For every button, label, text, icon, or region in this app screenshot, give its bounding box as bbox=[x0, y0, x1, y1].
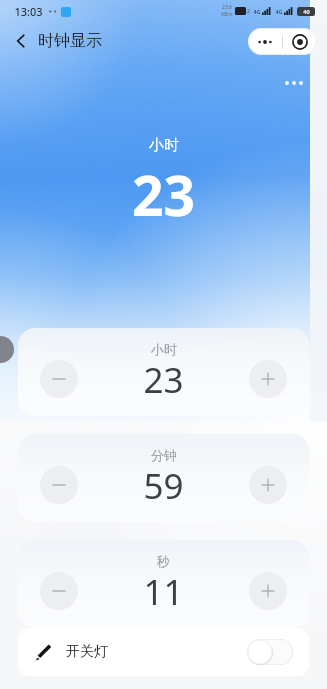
staticText: 开关灯 bbox=[66, 643, 108, 661]
button[interactable]: Increase bbox=[249, 360, 287, 398]
staticText: 分钟 bbox=[151, 447, 177, 463]
staticText: 4G bbox=[275, 8, 283, 15]
button[interactable]: Back bbox=[6, 27, 110, 55]
staticText: 40 bbox=[303, 8, 310, 15]
staticText: 11 bbox=[143, 568, 184, 616]
other: Edit bbox=[34, 643, 53, 662]
staticText: 小时 bbox=[149, 136, 179, 155]
button[interactable]: Increase bbox=[249, 572, 287, 610]
button[interactable]: Decrease bbox=[40, 572, 78, 610]
staticText: 13:03 bbox=[14, 4, 43, 19]
staticText: KB/s bbox=[221, 11, 232, 18]
button[interactable]: Decrease bbox=[40, 466, 78, 504]
staticText: 23 bbox=[132, 157, 195, 232]
button[interactable]: More options bbox=[279, 68, 309, 98]
staticText: 2 bbox=[247, 8, 250, 15]
button[interactable]: 秒 bbox=[18, 540, 309, 628]
button[interactable]: Edit bbox=[18, 628, 309, 676]
staticText: 59 bbox=[143, 462, 184, 510]
staticText: 小时 bbox=[151, 341, 177, 357]
staticText: 秒 bbox=[157, 553, 170, 569]
button[interactable]: Decrease bbox=[40, 360, 78, 398]
other: Back bbox=[12, 32, 30, 50]
button[interactable]: Toggle light bbox=[247, 639, 293, 665]
button[interactable]: 小时 bbox=[18, 328, 309, 416]
button[interactable]: 分钟 bbox=[18, 434, 309, 522]
staticText: 时钟显示 bbox=[38, 31, 102, 51]
staticText: 23.8 bbox=[222, 4, 232, 11]
button[interactable]: Close bbox=[283, 28, 317, 55]
staticText: 4G bbox=[253, 8, 261, 15]
button[interactable]: Menu bbox=[248, 28, 282, 55]
button[interactable]: Increase bbox=[249, 466, 287, 504]
staticText: 23 bbox=[143, 356, 184, 404]
